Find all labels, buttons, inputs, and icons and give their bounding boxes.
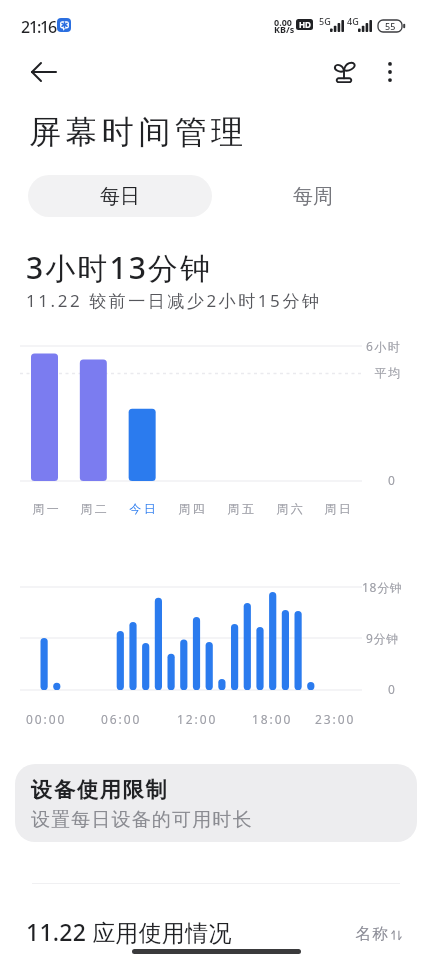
staticText: 00:00 — [26, 711, 67, 727]
staticText: 23:00 — [315, 711, 356, 727]
staticText: 21:16 — [21, 16, 56, 38]
staticText: 屏幕时间管理 — [29, 112, 248, 152]
staticText: 周二 — [79, 501, 108, 516]
button[interactable]: 每周 — [243, 175, 383, 217]
button[interactable]: Focus mode — [322, 50, 366, 94]
staticText: 每周 — [293, 184, 333, 209]
staticText: 设备使用限制 — [31, 777, 169, 803]
staticText: 周日 — [323, 501, 352, 516]
staticText: 每日 — [100, 184, 140, 209]
staticText: 今日 — [128, 501, 157, 516]
staticText: 3小时13分钟 — [26, 247, 213, 288]
staticText: 周一 — [31, 501, 60, 516]
staticText: 4G — [347, 15, 359, 27]
staticText: 55 — [385, 20, 396, 32]
staticText: 6小时 — [366, 338, 402, 354]
staticText: 周四 — [177, 501, 206, 516]
staticText: 0 — [388, 472, 395, 488]
staticText: 11.22 较前一日减少2小时15分钟 — [26, 289, 322, 312]
staticText: 5G — [319, 15, 331, 27]
staticText: 18分钟 — [362, 579, 403, 595]
staticText: 11.22 应用使用情况 — [26, 916, 232, 947]
button[interactable]: 设备使用限制 — [15, 764, 417, 842]
staticText: 18:00 — [252, 711, 293, 727]
staticText: KB/s — [274, 23, 295, 35]
staticText: 设置每日设备的可用时长 — [31, 808, 253, 832]
button[interactable]: More options — [368, 50, 412, 94]
button[interactable]: Back — [22, 50, 66, 94]
staticText: 0 — [388, 681, 395, 697]
staticText: 12:00 — [177, 711, 218, 727]
staticText: HD — [299, 19, 311, 30]
staticText: 周六 — [275, 501, 304, 516]
staticText: 06:00 — [101, 711, 142, 727]
button[interactable]: 每日 — [28, 175, 212, 217]
staticText: 名称 — [355, 924, 389, 944]
staticText: 9分钟 — [366, 630, 399, 646]
staticText: 0.00 — [274, 16, 292, 28]
staticText: 周五 — [226, 501, 255, 516]
button[interactable]: 名称 — [355, 924, 402, 944]
staticText: 平均 — [374, 365, 401, 380]
